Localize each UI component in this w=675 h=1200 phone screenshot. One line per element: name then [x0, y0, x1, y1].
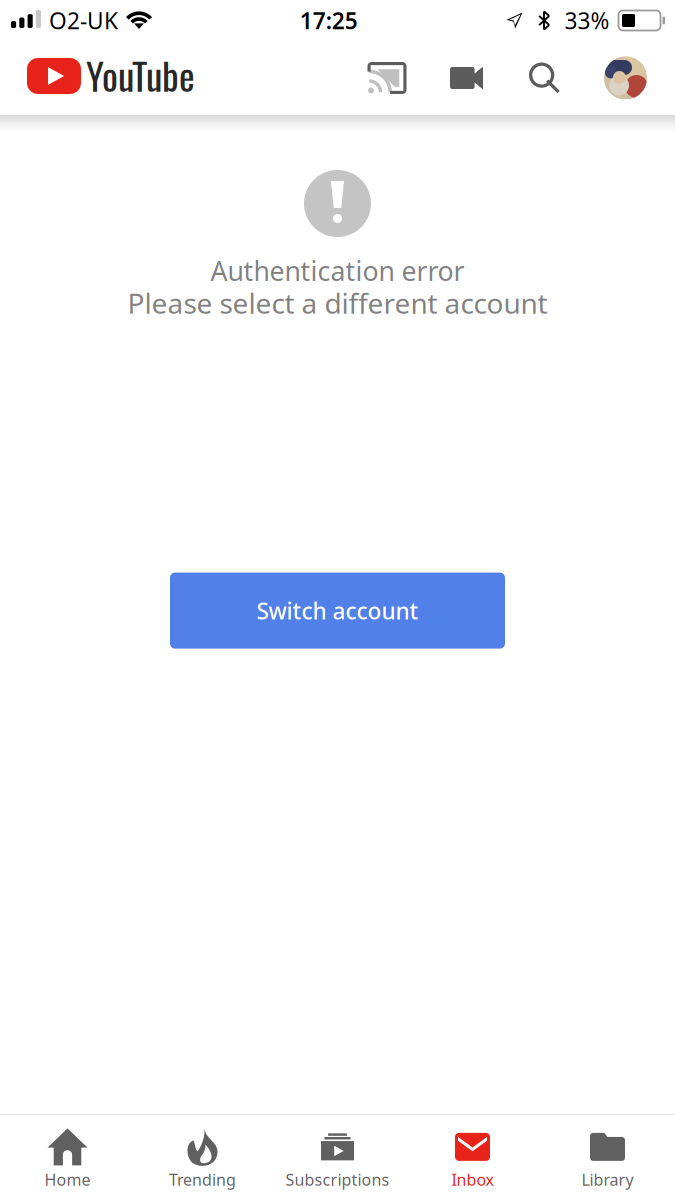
- button[interactable]: Cast to device: [333, 48, 441, 108]
- staticText: Library: [581, 1169, 633, 1190]
- staticText: Trending: [169, 1169, 236, 1190]
- staticText: Please select a different account: [127, 284, 547, 322]
- button[interactable]: Home: [0, 1115, 135, 1200]
- button[interactable]: Library: [540, 1115, 675, 1200]
- button[interactable]: Trending: [135, 1115, 270, 1200]
- button[interactable]: Switch account: [170, 573, 505, 649]
- button[interactable]: Subscriptions: [270, 1115, 405, 1200]
- button[interactable]: Account: [597, 48, 654, 108]
- staticText: Home: [44, 1169, 90, 1190]
- staticText: Inbox: [451, 1169, 493, 1190]
- staticText: Authentication error: [210, 253, 464, 288]
- button[interactable]: Inbox: [405, 1115, 540, 1200]
- staticText: Switch account: [256, 595, 418, 626]
- staticText: 17:25: [300, 5, 358, 35]
- staticText: Subscriptions: [285, 1169, 389, 1190]
- staticText: O2-UK: [49, 5, 118, 35]
- staticText: YouTube: [86, 47, 195, 103]
- button[interactable]: YouTube: [0, 41, 195, 115]
- button[interactable]: Create a video: [441, 48, 492, 108]
- staticText: 33%: [564, 5, 609, 35]
- button[interactable]: Search: [492, 48, 597, 108]
